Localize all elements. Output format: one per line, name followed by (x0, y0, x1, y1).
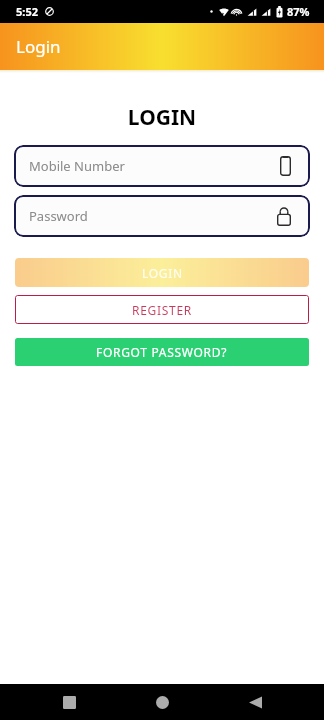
staticText: FORGOT PASSWORD? (96, 344, 228, 360)
button[interactable]: Recent apps (51, 684, 87, 720)
button[interactable]: LOGIN (15, 258, 309, 287)
button[interactable]: FORGOT PASSWORD? (15, 338, 309, 366)
staticText: 5:52 (16, 4, 38, 19)
button[interactable]: Home (144, 684, 180, 720)
staticText: 87% (287, 4, 310, 19)
button[interactable]: Back (237, 684, 273, 720)
staticText: LOGIN (142, 265, 183, 281)
staticText: Login (16, 35, 61, 58)
staticText: LOGIN (0, 103, 324, 132)
staticText: Password (29, 207, 277, 225)
button[interactable]: Password (14, 195, 310, 237)
staticText: REGISTER (132, 302, 192, 318)
button[interactable]: REGISTER (15, 295, 309, 324)
button[interactable]: Mobile Number (14, 145, 310, 187)
staticText: Mobile Number (29, 157, 280, 175)
